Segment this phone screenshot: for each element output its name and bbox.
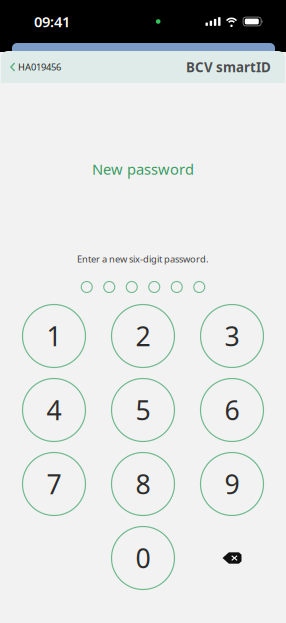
button[interactable]: 8 xyxy=(110,451,175,516)
button[interactable]: Delete xyxy=(199,525,264,590)
button[interactable]: 4 xyxy=(21,377,86,442)
button[interactable]: 7 xyxy=(21,451,86,516)
staticText: BCV smartID xyxy=(186,58,271,76)
staticText: 8 xyxy=(135,466,150,502)
button[interactable]: 9 xyxy=(199,451,264,516)
button[interactable]: 3 xyxy=(199,303,264,368)
staticText: 5 xyxy=(135,392,150,428)
staticText: 9 xyxy=(224,466,239,502)
staticText: New password xyxy=(92,159,194,179)
staticText: 09:41 xyxy=(34,12,70,31)
button[interactable]: 5 xyxy=(110,377,175,442)
staticText: Enter a new six-digit password. xyxy=(77,253,209,265)
staticText: 4 xyxy=(46,392,61,428)
button[interactable]: 6 xyxy=(199,377,264,442)
button[interactable]: 0 xyxy=(110,525,175,590)
staticText: 3 xyxy=(224,318,239,354)
staticText: 0 xyxy=(135,540,150,576)
staticText: HA019456 xyxy=(18,61,61,73)
staticText: 2 xyxy=(135,318,150,354)
button[interactable]: 2 xyxy=(110,303,175,368)
button[interactable]: 1 xyxy=(21,303,86,368)
staticText: 6 xyxy=(224,392,239,428)
staticText: 7 xyxy=(46,466,61,502)
button[interactable]: HA019456 xyxy=(1,55,61,79)
staticText: 1 xyxy=(46,318,61,354)
